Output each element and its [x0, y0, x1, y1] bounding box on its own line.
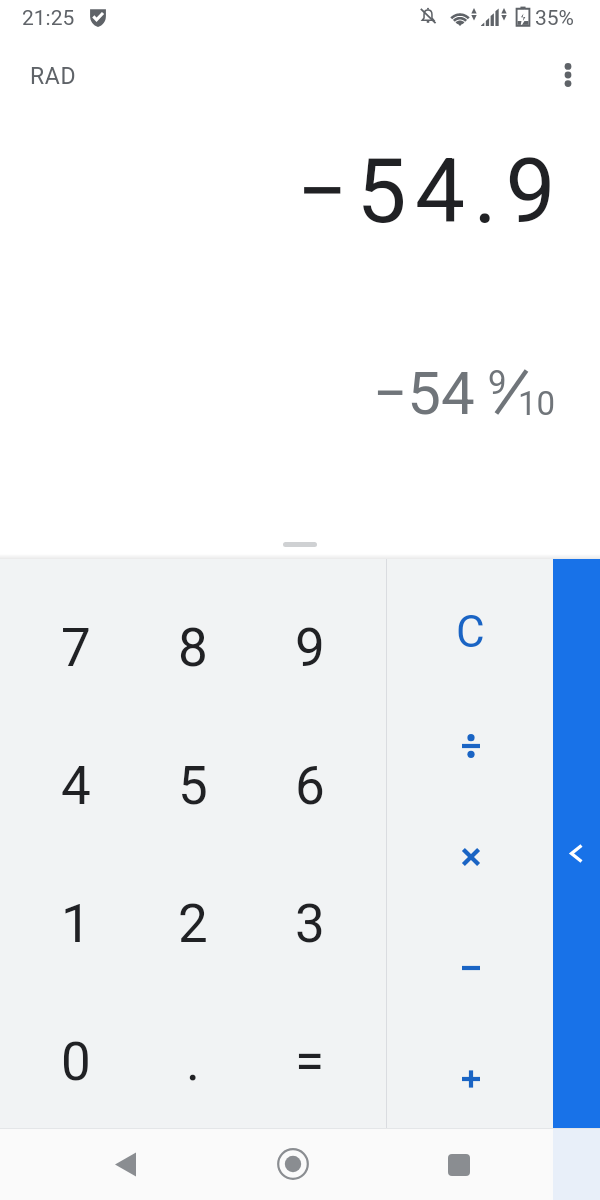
button[interactable]: Drag handle: [283, 542, 317, 547]
staticText: 8: [178, 617, 208, 679]
button[interactable]: 8: [134, 579, 251, 717]
staticText: .: [186, 1031, 200, 1093]
button[interactable]: 4: [17, 717, 134, 855]
staticText: 3: [295, 893, 325, 955]
button[interactable]: More options: [544, 51, 592, 99]
button[interactable]: 6: [251, 717, 368, 855]
button[interactable]: =: [251, 993, 368, 1131]
button[interactable]: 9: [251, 579, 368, 717]
staticText: 7: [61, 617, 91, 679]
staticText: 0: [61, 1031, 91, 1093]
button[interactable]: Home: [253, 1128, 333, 1200]
button[interactable]: Back: [85, 1128, 165, 1200]
staticText: 9: [295, 617, 325, 679]
staticText: 6: [295, 755, 325, 817]
button[interactable]: 0: [17, 993, 134, 1131]
staticText: 4: [61, 755, 91, 817]
button[interactable]: 2: [134, 855, 251, 993]
button[interactable]: 1: [17, 855, 134, 993]
staticText: 9: [488, 363, 507, 402]
staticText: 35%: [535, 6, 574, 31]
staticText: C: [456, 606, 485, 658]
staticText: 10: [518, 384, 556, 423]
staticText: −54: [373, 358, 475, 428]
button[interactable]: Add: [415, 1023, 526, 1134]
staticText: =: [295, 1031, 325, 1093]
button[interactable]: Divide: [415, 690, 526, 801]
staticText: 1: [61, 893, 91, 955]
button[interactable]: RAD: [14, 51, 93, 102]
button[interactable]: 5: [134, 717, 251, 855]
button[interactable]: Recent apps: [419, 1129, 499, 1200]
staticText: RAD: [30, 63, 77, 90]
button[interactable]: Multiply: [415, 801, 526, 912]
staticText: −54.9: [297, 139, 564, 243]
button[interactable]: Clear: [415, 577, 526, 688]
button[interactable]: Show scientific pad: [553, 559, 600, 1128]
staticText: 2: [178, 893, 208, 955]
button[interactable]: Subtract: [415, 912, 526, 1023]
button[interactable]: 7: [17, 579, 134, 717]
button[interactable]: .: [134, 993, 251, 1131]
staticText: 21:25: [22, 6, 75, 31]
staticText: 5: [178, 755, 208, 817]
button[interactable]: 3: [251, 855, 368, 993]
